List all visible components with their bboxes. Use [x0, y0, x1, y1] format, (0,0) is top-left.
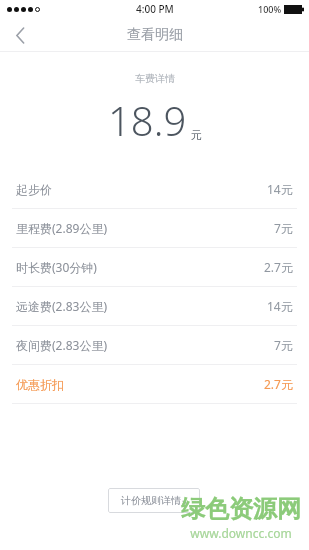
- button[interactable]: 时长费(30分钟): [0, 248, 309, 286]
- staticText: 优惠折扣: [16, 377, 64, 392]
- staticText: 远途费(2.83公里): [16, 298, 108, 314]
- staticText: 7元: [274, 220, 293, 236]
- button[interactable]: 夜间费(2.83公里): [0, 326, 309, 364]
- staticText: 元: [191, 128, 202, 142]
- button[interactable]: 远途费(2.83公里): [0, 287, 309, 325]
- staticText: 绿色资源网: [181, 494, 301, 524]
- button[interactable]: 里程费(2.89公里): [0, 209, 309, 247]
- staticText: www.downcc.com: [190, 525, 292, 541]
- staticText: 14元: [267, 298, 293, 314]
- button[interactable]: 优惠折扣: [0, 365, 309, 403]
- staticText: 4:00 PM: [136, 2, 174, 16]
- button[interactable]: Back: [0, 18, 40, 52]
- staticText: 2.7元: [264, 259, 293, 275]
- staticText: 时长费(30分钟): [16, 259, 97, 275]
- staticText: »: [182, 495, 187, 507]
- staticText: 100%: [258, 3, 282, 15]
- staticText: 车费详情: [135, 72, 175, 85]
- staticText: 7元: [274, 337, 293, 353]
- button[interactable]: 起步价: [0, 170, 309, 208]
- staticText: 计价规则详情: [121, 494, 181, 507]
- staticText: 14元: [267, 181, 293, 197]
- staticText: 查看明细: [127, 26, 183, 44]
- staticText: 夜间费(2.83公里): [16, 337, 108, 353]
- staticText: 里程费(2.89公里): [16, 220, 108, 236]
- staticText: 2.7元: [264, 376, 293, 392]
- button[interactable]: 计价规则详情: [108, 488, 200, 513]
- staticText: 18.9: [108, 93, 187, 147]
- staticText: 起步价: [16, 182, 52, 197]
